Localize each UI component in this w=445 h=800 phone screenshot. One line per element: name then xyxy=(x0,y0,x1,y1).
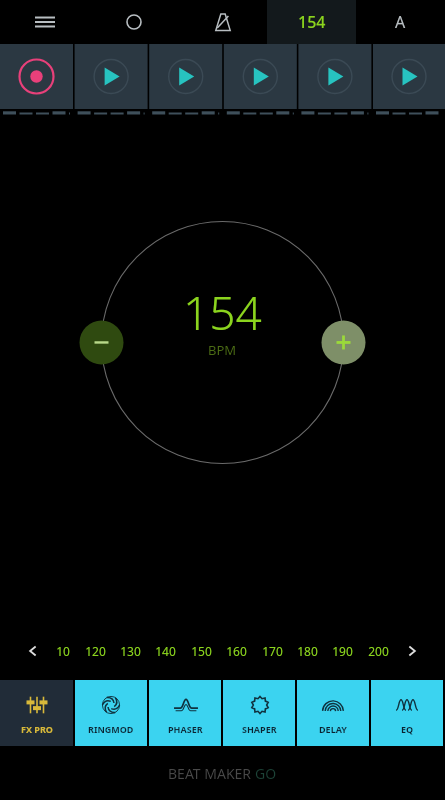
staticText: EQ xyxy=(401,723,414,735)
staticText: 10 xyxy=(56,643,70,659)
button[interactable]: Loop xyxy=(89,0,178,44)
staticText: 120 xyxy=(85,643,106,659)
button[interactable]: FX PRO xyxy=(0,680,73,746)
button[interactable]: 130 xyxy=(120,643,141,659)
staticText: BEAT MAKER xyxy=(168,764,255,783)
button[interactable]: SHAPER xyxy=(223,680,295,746)
button[interactable]: 140 xyxy=(155,643,176,659)
button[interactable]: Play track 4 xyxy=(300,44,375,118)
button[interactable]: Menu xyxy=(0,0,89,44)
staticText: SHAPER xyxy=(242,723,277,735)
staticText: 150 xyxy=(191,643,212,659)
button[interactable]: Metronome xyxy=(178,0,267,44)
staticText: BPM xyxy=(208,341,237,359)
button[interactable]: 200 xyxy=(368,643,389,659)
staticText: RINGMOD xyxy=(88,723,134,735)
button[interactable]: Play track 3 xyxy=(225,44,300,118)
staticText: GO xyxy=(255,764,277,783)
button[interactable]: Increase BPM xyxy=(323,332,367,376)
button[interactable]: 190 xyxy=(332,643,353,659)
staticText: 200 xyxy=(368,643,389,659)
staticText: DELAY xyxy=(319,723,347,735)
staticText: 140 xyxy=(155,643,176,659)
button[interactable]: PHASER xyxy=(149,680,221,746)
button[interactable]: Decrease BPM xyxy=(82,332,126,376)
button[interactable]: Record track xyxy=(0,44,75,118)
button[interactable]: Play track 2 xyxy=(150,44,225,118)
button[interactable]: 120 xyxy=(85,643,106,659)
staticText: A xyxy=(395,11,406,33)
staticText: 154 xyxy=(298,11,326,33)
button[interactable]: EQ xyxy=(371,680,443,746)
staticText: 160 xyxy=(226,643,247,659)
staticText: 180 xyxy=(297,643,318,659)
button[interactable]: 150 xyxy=(191,643,212,659)
button[interactable]: Play track 5 xyxy=(375,44,445,118)
button[interactable]: Play track 1 xyxy=(75,44,150,118)
button[interactable]: Previous range xyxy=(22,640,44,662)
staticText: 130 xyxy=(120,643,141,659)
staticText: 170 xyxy=(262,643,283,659)
staticText: FX PRO xyxy=(21,723,53,735)
button[interactable]: 170 xyxy=(262,643,283,659)
staticText: 190 xyxy=(332,643,353,659)
button[interactable]: 10 xyxy=(56,643,70,659)
staticText: PHASER xyxy=(168,723,203,735)
staticText: 154 xyxy=(183,281,262,344)
button[interactable]: 180 xyxy=(297,643,318,659)
button[interactable]: Key A xyxy=(356,0,445,44)
button[interactable]: DELAY xyxy=(297,680,369,746)
button[interactable]: Next range xyxy=(401,640,423,662)
button[interactable]: 154 xyxy=(267,0,356,44)
button[interactable]: RINGMOD xyxy=(75,680,147,746)
button[interactable]: 160 xyxy=(226,643,247,659)
